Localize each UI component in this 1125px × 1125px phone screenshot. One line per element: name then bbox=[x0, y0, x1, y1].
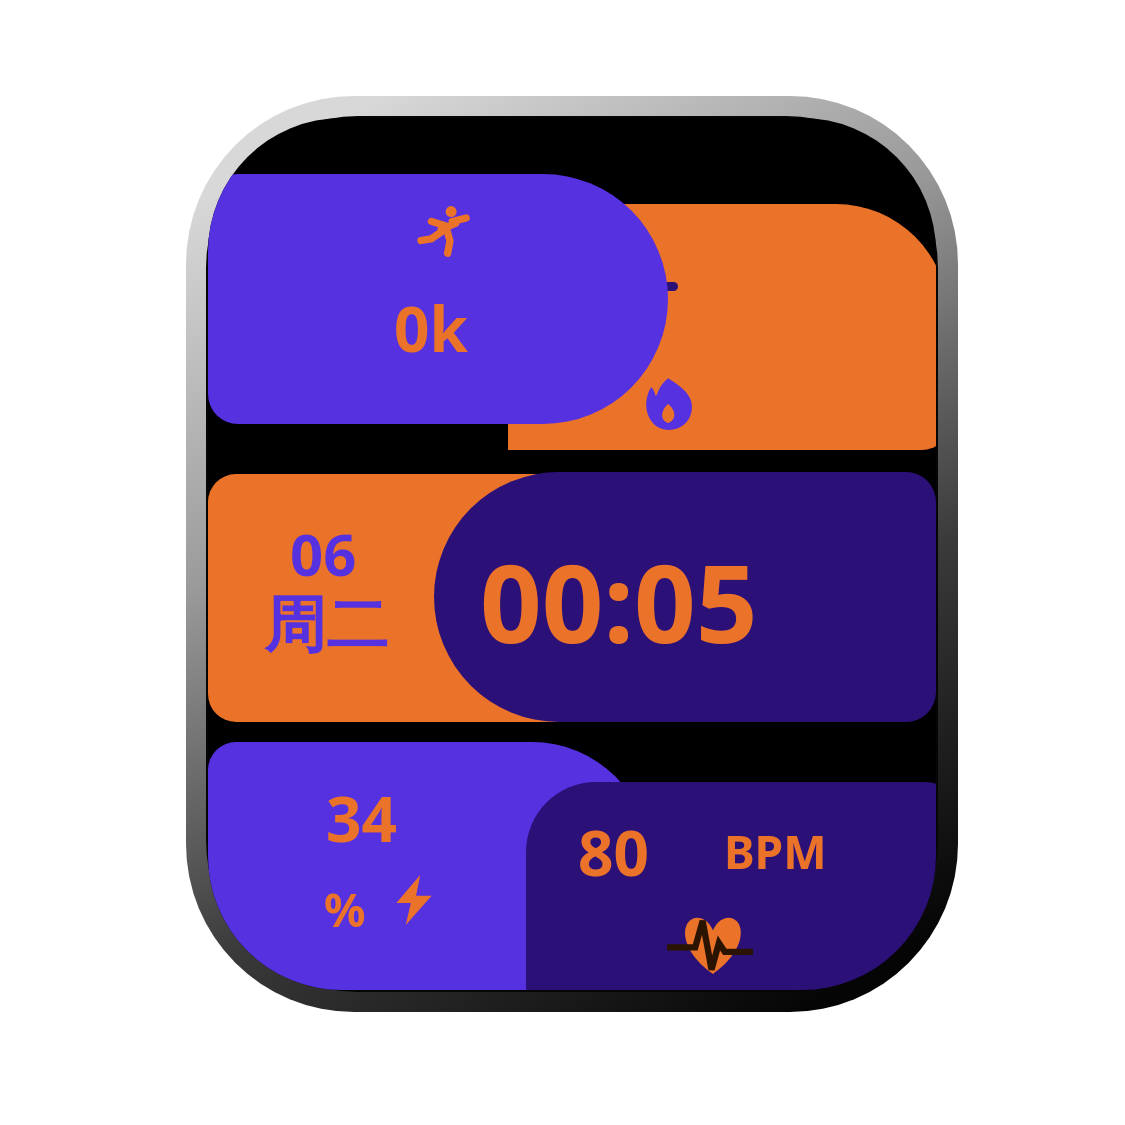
staticText: 80 bbox=[578, 810, 649, 894]
other: Charging bbox=[388, 874, 440, 926]
other: Steps bbox=[414, 204, 472, 262]
staticText: % bbox=[324, 878, 366, 941]
button[interactable]: Steps bbox=[208, 174, 668, 424]
staticText: 0k bbox=[394, 286, 468, 370]
button[interactable]: 34 bbox=[208, 742, 650, 990]
other: Calories bbox=[640, 376, 696, 432]
button[interactable]: 00:05 bbox=[434, 472, 936, 722]
button[interactable]: 80 bbox=[526, 782, 936, 990]
staticText: 34 bbox=[326, 776, 397, 860]
staticText: BPM bbox=[724, 820, 827, 883]
staticText: 00:05 bbox=[480, 528, 936, 722]
button[interactable]: 06 bbox=[208, 474, 628, 722]
staticText: 周二 bbox=[264, 586, 388, 664]
other: Heart rate bbox=[676, 906, 750, 980]
button[interactable]: Calories bbox=[508, 204, 936, 450]
staticText: 06 bbox=[290, 514, 357, 593]
